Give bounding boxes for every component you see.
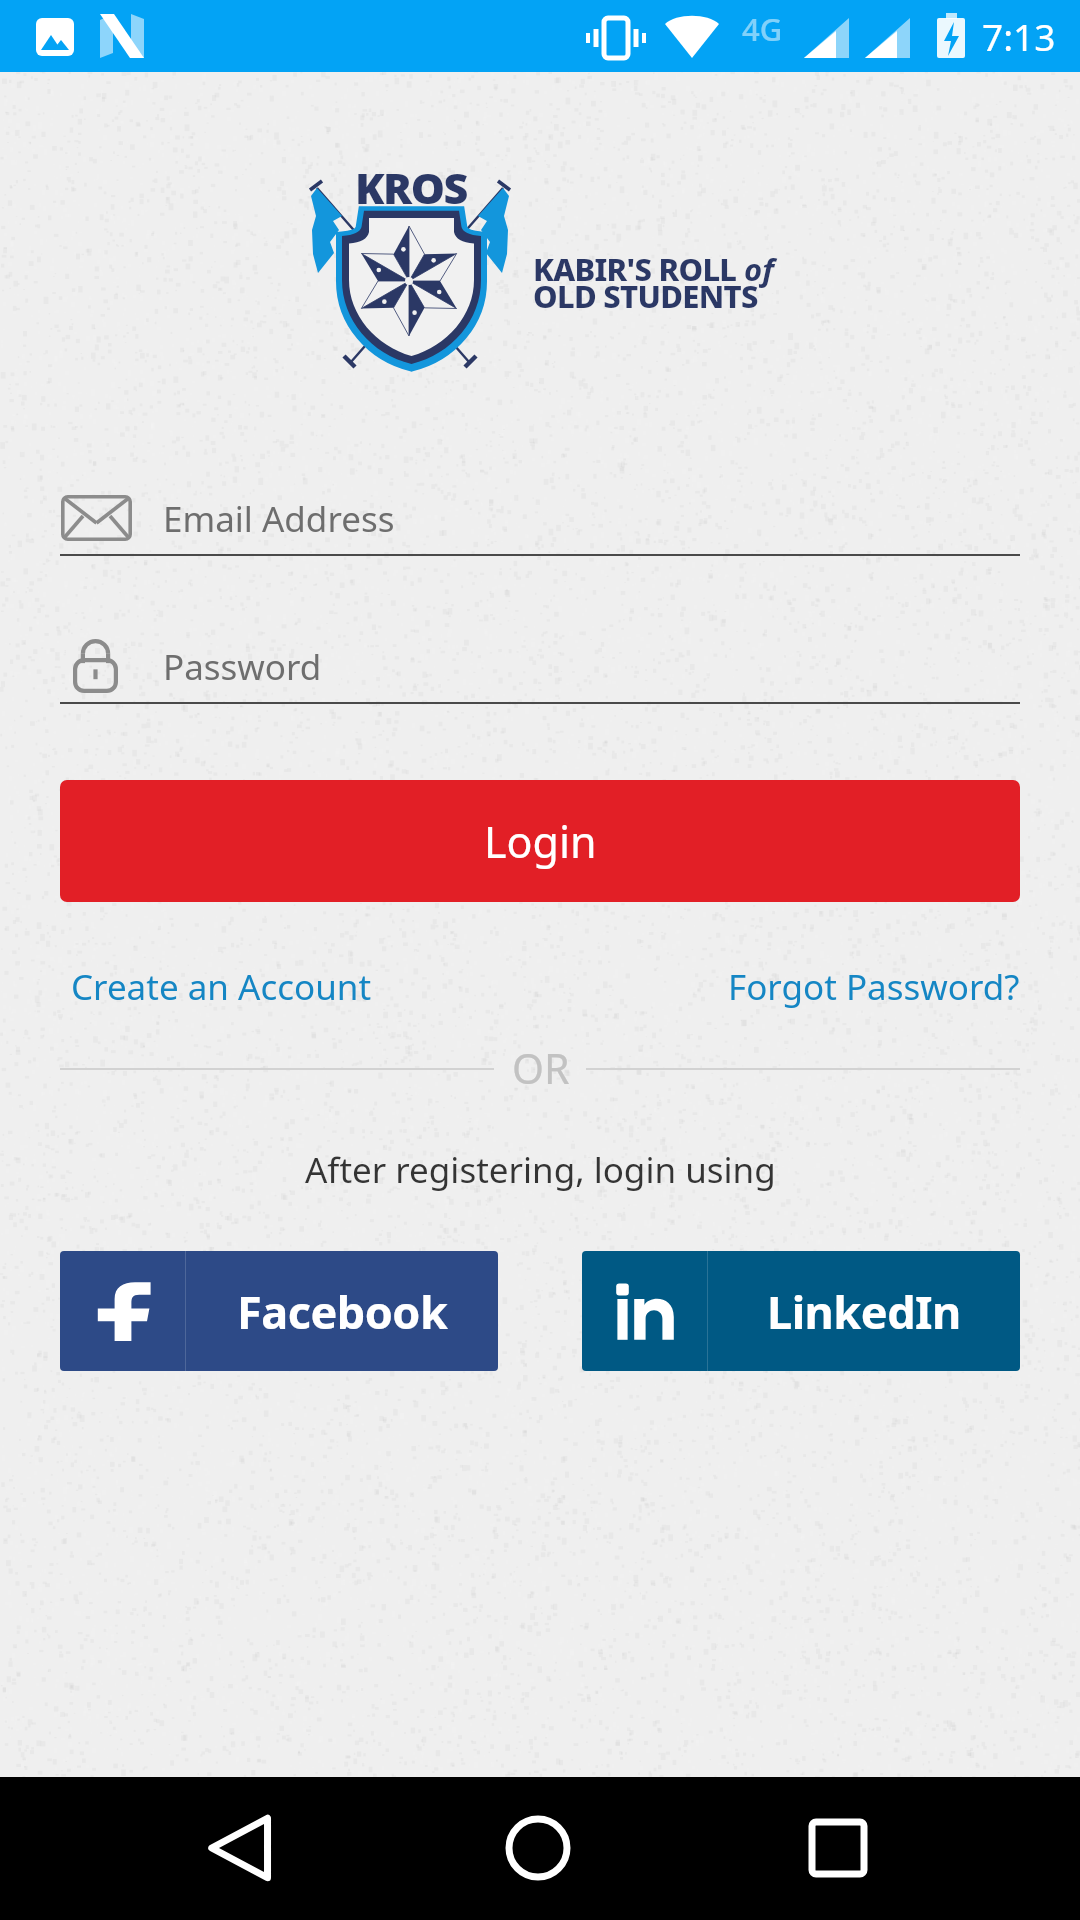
staticText: of xyxy=(744,248,774,290)
staticText: Login xyxy=(484,812,597,871)
staticText: LinkedIn xyxy=(767,1281,961,1342)
staticText: KROS xyxy=(355,158,467,217)
button[interactable]: Forgot Password? xyxy=(728,958,1020,1016)
button[interactable]: Back xyxy=(184,1793,294,1903)
staticText: Password xyxy=(163,643,322,691)
button[interactable]: Recent apps xyxy=(783,1793,893,1903)
staticText: Create an Account xyxy=(71,963,372,1011)
button[interactable]: Home xyxy=(483,1793,593,1903)
staticText: KABIR'S ROLL xyxy=(533,248,744,290)
staticText: OR xyxy=(512,1040,570,1096)
staticText: OLD STUDENTS xyxy=(533,275,758,317)
staticText: After registering, login using xyxy=(305,1146,776,1194)
button[interactable]: Facebook xyxy=(60,1251,498,1371)
button[interactable]: Login xyxy=(60,780,1020,902)
staticText: 7:13 xyxy=(982,11,1056,61)
staticText: Email Address xyxy=(163,495,395,543)
staticText: Forgot Password? xyxy=(728,963,1020,1011)
staticText: Facebook xyxy=(237,1281,448,1342)
button[interactable]: Create an Account xyxy=(60,958,382,1016)
staticText: 4G xyxy=(742,8,783,50)
button[interactable]: LinkedIn xyxy=(582,1251,1020,1371)
